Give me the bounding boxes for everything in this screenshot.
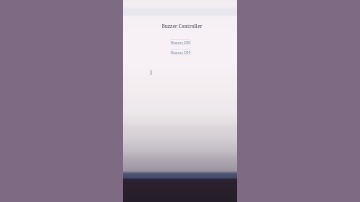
staticText: Buzzer ON — [171, 40, 190, 45]
staticText: Buzzer OFF — [171, 50, 191, 55]
button[interactable]: Buzzer OFF — [170, 49, 191, 55]
button[interactable]: Buzzer ON — [170, 39, 191, 45]
staticText: Buzzer Controller — [125, 23, 239, 29]
